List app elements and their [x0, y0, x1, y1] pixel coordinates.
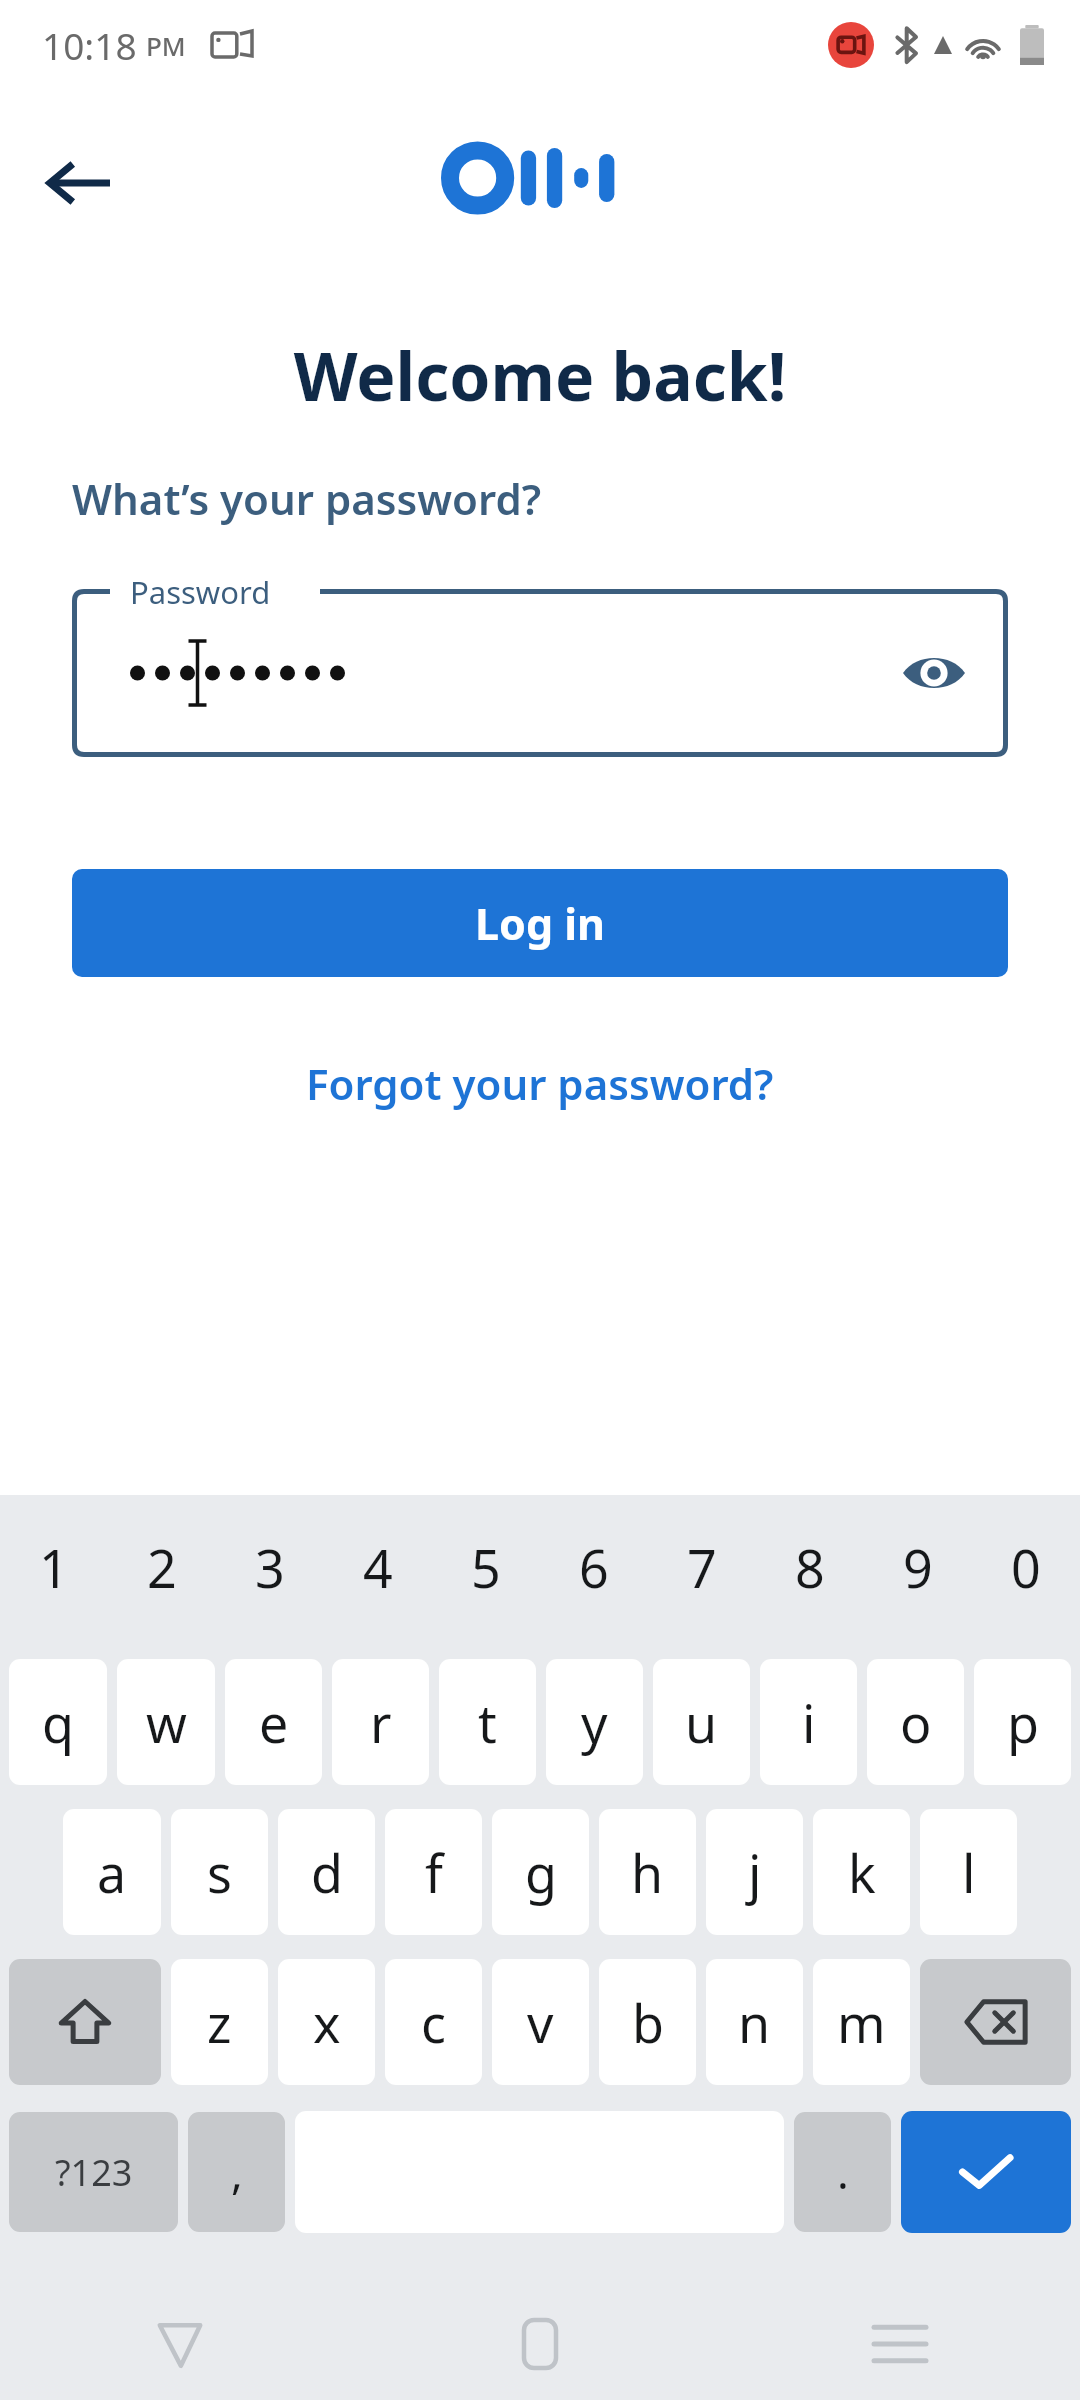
staticText: 4	[363, 1532, 393, 1603]
button[interactable]: t	[439, 1659, 536, 1785]
staticText: Password	[130, 571, 271, 613]
staticText: q	[42, 1687, 74, 1758]
staticText: v	[527, 1987, 554, 2058]
button[interactable]: w	[117, 1659, 215, 1785]
staticText: f	[425, 1837, 443, 1908]
button[interactable]: i	[760, 1659, 857, 1785]
staticText: .	[837, 2142, 849, 2202]
staticText: p	[1007, 1687, 1039, 1758]
staticText: o	[900, 1687, 932, 1758]
staticText: 9	[903, 1532, 933, 1603]
button[interactable]: j	[706, 1809, 803, 1935]
staticText: m	[837, 1987, 886, 2058]
button[interactable]: h	[599, 1809, 696, 1935]
staticText: What’s your password?	[72, 470, 542, 527]
button[interactable]: v	[492, 1959, 589, 2085]
button[interactable]: Log in	[72, 869, 1008, 977]
staticText: i	[802, 1687, 816, 1758]
staticText: z	[207, 1987, 232, 2058]
staticText: c	[421, 1987, 446, 2058]
button[interactable]: k	[813, 1809, 910, 1935]
button[interactable]: 2	[108, 1508, 216, 1626]
button[interactable]: Enter	[901, 2111, 1071, 2233]
button[interactable]: l	[920, 1809, 1017, 1935]
staticText: Log in	[475, 894, 606, 953]
button[interactable]: Recents	[720, 2288, 1080, 2400]
button[interactable]: z	[171, 1959, 268, 2085]
button[interactable]: y	[546, 1659, 643, 1785]
button[interactable]: e	[225, 1659, 322, 1785]
staticText: d	[311, 1837, 343, 1908]
button[interactable]: 9	[864, 1508, 972, 1626]
staticText: 0	[1011, 1532, 1041, 1603]
staticText: a	[97, 1837, 127, 1908]
button[interactable]: 8	[756, 1508, 864, 1626]
button[interactable]: q	[9, 1659, 107, 1785]
button[interactable]: Forgot your password?	[0, 1055, 1080, 1112]
staticText: b	[632, 1987, 664, 2058]
staticText: e	[259, 1687, 289, 1758]
staticText: s	[207, 1837, 232, 1908]
staticText: Forgot your password?	[306, 1055, 774, 1112]
button[interactable]: Show password	[886, 625, 982, 721]
button[interactable]: 0	[972, 1508, 1080, 1626]
button[interactable]: s	[171, 1809, 268, 1935]
button[interactable]: a	[63, 1809, 161, 1935]
button[interactable]: 6	[540, 1508, 648, 1626]
button[interactable]: u	[653, 1659, 750, 1785]
staticText: n	[738, 1987, 771, 2058]
button[interactable]: Shift	[9, 1959, 161, 2085]
button[interactable]: Symbols	[9, 2112, 178, 2232]
button[interactable]: m	[813, 1959, 910, 2085]
button[interactable]: Back	[24, 128, 134, 238]
staticText: y	[581, 1687, 608, 1758]
button[interactable]: c	[385, 1959, 482, 2085]
staticText: 6	[579, 1532, 609, 1603]
staticText: 3	[255, 1532, 285, 1603]
staticText: h	[631, 1837, 664, 1908]
button[interactable]: f	[385, 1809, 482, 1935]
staticText: 1	[39, 1532, 69, 1603]
staticText: 8	[795, 1532, 825, 1603]
button[interactable]: g	[492, 1809, 589, 1935]
button[interactable]: 5	[432, 1508, 540, 1626]
staticText: 2	[147, 1532, 177, 1603]
button[interactable]: 4	[324, 1508, 432, 1626]
staticText: j	[748, 1837, 762, 1908]
button[interactable]: Backspace	[920, 1959, 1071, 2085]
button[interactable]: o	[867, 1659, 964, 1785]
button[interactable]: Period	[794, 2112, 891, 2232]
button[interactable]: n	[706, 1959, 803, 2085]
staticText: 5	[471, 1532, 501, 1603]
button[interactable]: r	[332, 1659, 429, 1785]
button[interactable]: Password	[72, 589, 1008, 757]
staticText: u	[685, 1687, 718, 1758]
staticText: k	[848, 1837, 876, 1908]
button[interactable]: d	[278, 1809, 375, 1935]
staticText: w	[146, 1687, 187, 1758]
button[interactable]: x	[278, 1959, 375, 2085]
button[interactable]: Home	[360, 2288, 720, 2400]
button[interactable]: Back	[0, 2288, 360, 2400]
staticText: g	[525, 1837, 557, 1908]
staticText: x	[313, 1987, 341, 2058]
staticText: ?123	[55, 2148, 133, 2197]
staticText: 7	[687, 1532, 717, 1603]
staticText: r	[370, 1687, 392, 1758]
button[interactable]: p	[974, 1659, 1071, 1785]
staticText: 10:18	[42, 20, 137, 70]
staticText: Welcome back!	[0, 330, 1080, 420]
button[interactable]: 1	[0, 1508, 108, 1626]
staticText: ,	[231, 2142, 243, 2202]
button[interactable]: b	[599, 1959, 696, 2085]
staticText: t	[478, 1687, 497, 1758]
staticText: l	[962, 1837, 976, 1908]
button[interactable]: Comma	[188, 2112, 285, 2232]
staticText: PM	[146, 28, 186, 63]
button[interactable]: 3	[216, 1508, 324, 1626]
button[interactable]: 7	[648, 1508, 756, 1626]
